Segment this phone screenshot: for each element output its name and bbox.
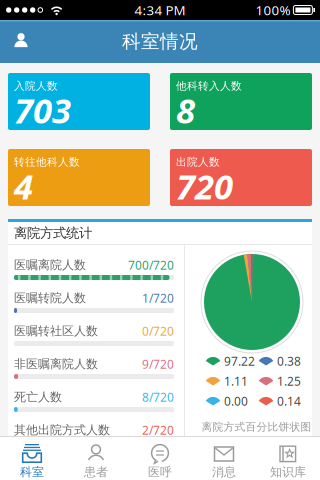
button[interactable]: 出院人数 — [170, 149, 312, 206]
staticText: 0/720 — [142, 323, 174, 339]
button[interactable]: 消息 — [192, 437, 256, 480]
button[interactable]: 患者 — [64, 437, 128, 480]
button[interactable]: 转往他科人数 — [8, 149, 150, 206]
staticText: 患者 — [84, 465, 108, 479]
staticText: 700/720 — [128, 257, 174, 273]
staticText: 1/720 — [142, 290, 174, 306]
button[interactable]: 科室 — [0, 437, 64, 480]
staticText: 他科转入人数 — [176, 79, 242, 92]
staticText: 医嘱转院人数 — [14, 291, 86, 305]
button[interactable]: 知识库 — [256, 437, 320, 480]
staticText: 知识库 — [270, 465, 306, 479]
staticText: 1.25 — [277, 373, 301, 389]
staticText: 0.14 — [277, 393, 301, 409]
staticText: 97.22 — [224, 353, 255, 369]
staticText: 科室 — [20, 465, 44, 479]
staticText: 9/720 — [142, 356, 174, 372]
staticText: 其他出院方式人数 — [14, 423, 110, 437]
button[interactable]: User — [0, 20, 28, 63]
staticText: 医嘱离院人数 — [14, 258, 86, 272]
staticText: 1.11 — [224, 373, 248, 389]
staticText: 离院方式百分比饼状图 — [201, 420, 311, 433]
staticText: 0.00 — [224, 393, 248, 409]
staticText: 4:34 PM — [134, 1, 185, 19]
staticText: 医呼 — [148, 465, 172, 479]
staticText: 死亡人数 — [14, 390, 62, 404]
staticText: 离院方式统计 — [14, 225, 92, 241]
staticText: 2/720 — [142, 422, 174, 438]
button[interactable]: 医呼 — [128, 437, 192, 480]
staticText: 0.38 — [277, 353, 301, 369]
staticText: 100% — [255, 1, 290, 19]
staticText: 8/720 — [142, 389, 174, 405]
staticText: 消息 — [212, 465, 236, 479]
staticText: 4 — [14, 163, 33, 209]
button[interactable]: 入院人数 — [8, 73, 150, 130]
staticText: 科室情况 — [122, 30, 198, 53]
staticText: 医嘱转社区人数 — [14, 324, 98, 338]
staticText: 转往他科人数 — [14, 155, 80, 168]
button[interactable]: 他科转入人数 — [170, 73, 312, 130]
staticText: 入院人数 — [14, 79, 58, 92]
staticText: 703 — [14, 87, 71, 133]
staticText: 非医嘱离院人数 — [14, 357, 98, 371]
staticText: 720 — [176, 163, 233, 209]
staticText: 出院人数 — [176, 155, 220, 168]
staticText: 8 — [176, 87, 195, 133]
